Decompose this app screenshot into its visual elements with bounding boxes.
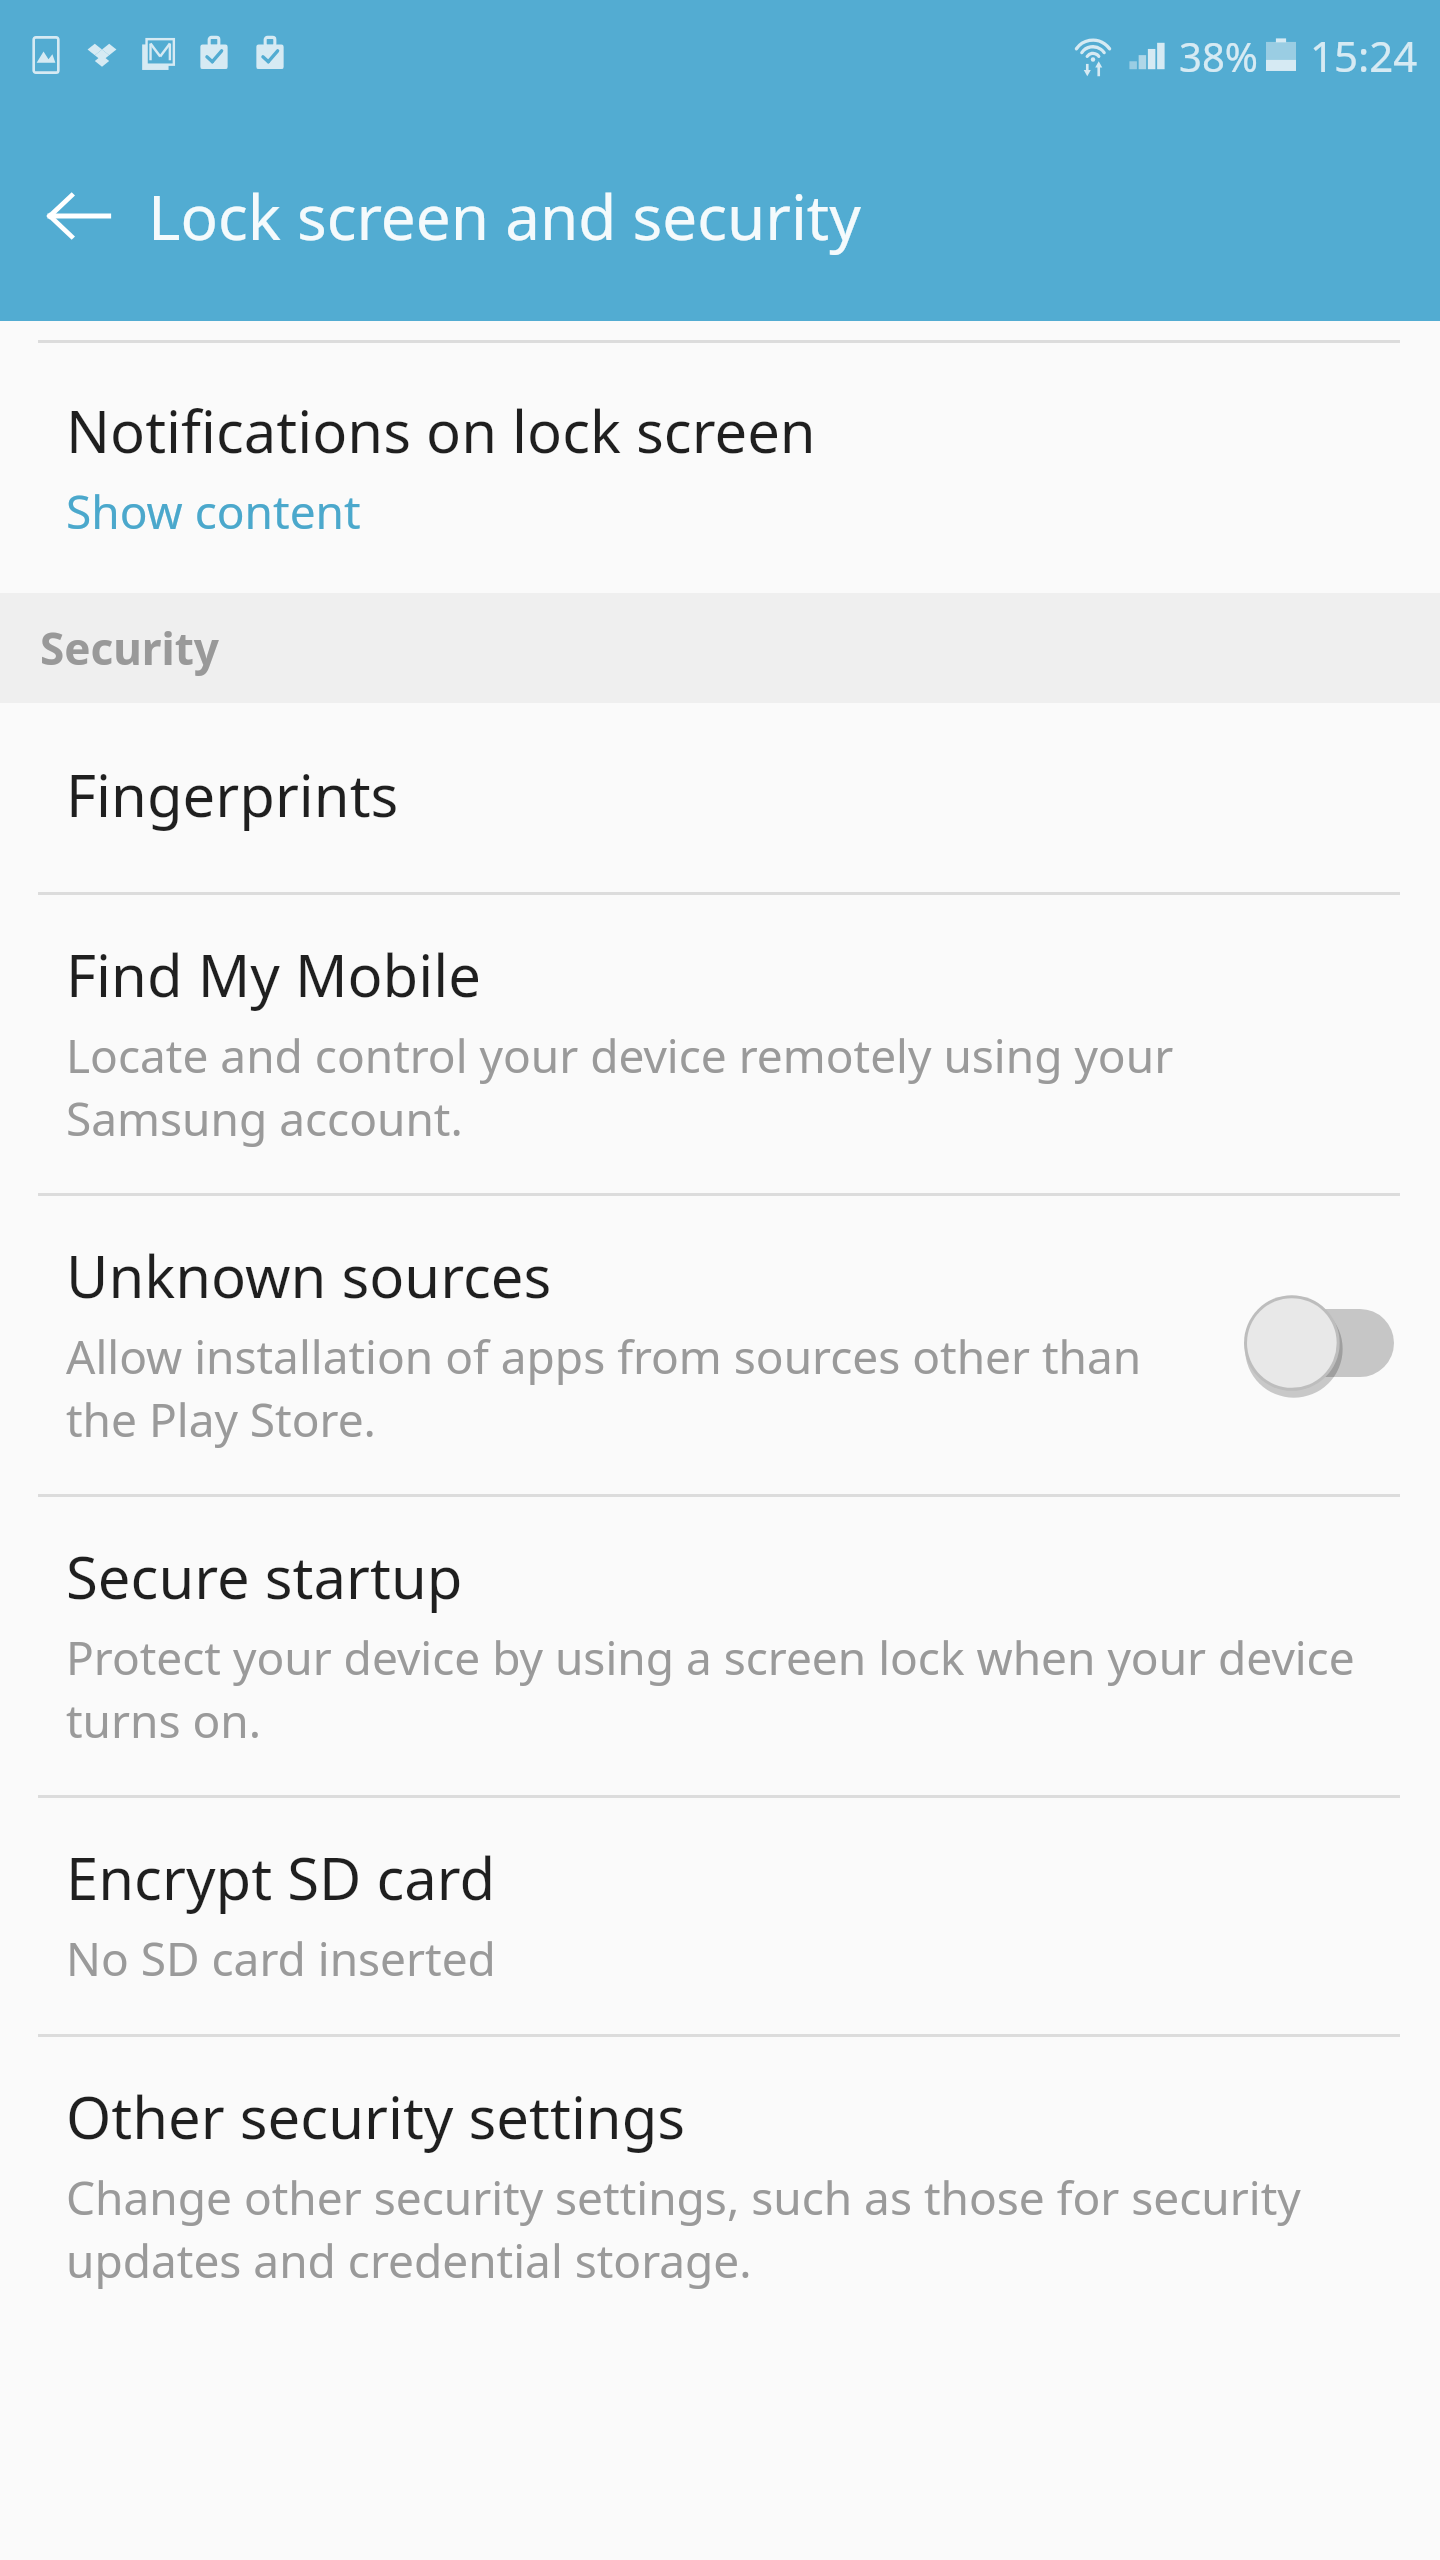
staticText: 38% [1179, 29, 1258, 83]
button[interactable]: Find My Mobile [0, 895, 1440, 1196]
button[interactable]: Encrypt SD card [0, 1798, 1440, 2037]
button[interactable]: Unknown sources toggle [1240, 1291, 1400, 1395]
button[interactable]: Notifications on lock screen [0, 343, 1440, 593]
staticText: Secure startup [66, 1537, 463, 1616]
button[interactable]: Back [30, 168, 126, 264]
staticText: 15:24 [1310, 27, 1418, 84]
button[interactable]: Secure startup [0, 1497, 1440, 1798]
staticText: Find My Mobile [66, 935, 481, 1014]
button[interactable]: Fingerprints [0, 703, 1440, 895]
staticText: Show content [66, 480, 361, 543]
staticText: Change other security settings, such as … [66, 2166, 1380, 2291]
staticText: Allow installation of apps from sources … [66, 1325, 1210, 1450]
staticText: Fingerprints [66, 755, 399, 834]
button[interactable]: Other security settings [0, 2037, 1440, 2335]
staticText: Notifications on lock screen [66, 391, 816, 470]
staticText: No SD card inserted [66, 1927, 496, 1990]
staticText: Security [40, 618, 219, 678]
staticText: Locate and control your device remotely … [66, 1024, 1380, 1149]
staticText: Other security settings [66, 2077, 686, 2156]
staticText: Protect your device by using a screen lo… [66, 1626, 1380, 1751]
staticText: Lock screen and security [148, 174, 861, 258]
button[interactable]: Unknown sources [0, 1196, 1440, 1497]
staticText: Encrypt SD card [66, 1838, 496, 1917]
staticText: Unknown sources [66, 1236, 552, 1315]
